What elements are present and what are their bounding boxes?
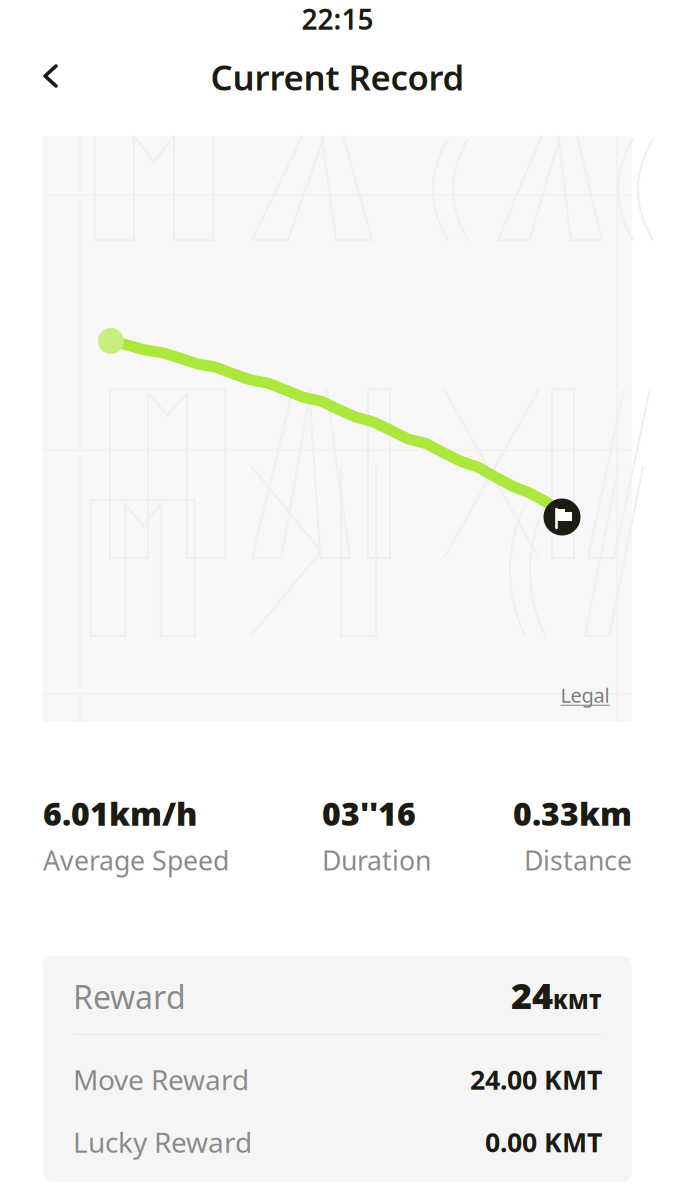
button[interactable]: Back xyxy=(28,54,72,98)
staticText: 24 xyxy=(511,971,553,1019)
staticText: Move Reward xyxy=(73,1061,249,1098)
staticText: 0.33km xyxy=(513,792,632,834)
staticText: Legal xyxy=(560,682,609,708)
staticText: 0.00 KMT xyxy=(485,1124,602,1160)
staticText: Current Record xyxy=(210,54,464,100)
staticText: 6.01km/h xyxy=(43,792,197,834)
staticText: Reward xyxy=(73,975,186,1018)
button[interactable]: Legal xyxy=(560,682,609,708)
staticText: KMT xyxy=(553,986,602,1015)
staticText: Average Speed xyxy=(43,842,229,878)
staticText: 24.00 KMT xyxy=(470,1062,602,1097)
staticText: 03''16 xyxy=(322,792,416,834)
staticText: Distance xyxy=(524,842,632,878)
staticText: Duration xyxy=(322,842,431,878)
staticText: Lucky Reward xyxy=(73,1123,252,1161)
staticText: 22:15 xyxy=(301,0,373,38)
